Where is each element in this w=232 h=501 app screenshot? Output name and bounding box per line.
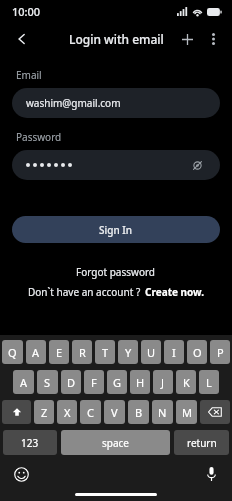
staticText: Email [16,68,42,82]
staticText: G [113,375,122,390]
button[interactable]: space [61,430,170,455]
staticText: M [182,405,192,420]
button[interactable]: Show password [188,156,206,174]
staticText: E [56,345,63,360]
staticText: O [193,345,202,360]
button[interactable]: E [49,340,69,364]
button[interactable]: A [26,340,46,364]
staticText: Create now. [145,285,205,299]
staticText: Login with email [69,31,164,47]
staticText: A [32,345,40,360]
staticText: J [161,375,165,390]
staticText: return [187,436,217,450]
button[interactable]: Sign In [12,216,220,243]
staticText: space [102,436,129,450]
staticText: A [20,375,28,390]
staticText: P [217,345,224,360]
button[interactable]: Emoji [12,465,30,483]
button[interactable]: U [141,340,161,364]
staticText: U [147,345,156,360]
button[interactable]: X [57,400,77,424]
button[interactable]: L [199,370,219,394]
staticText: T [102,345,109,360]
button[interactable]: F [84,370,104,394]
button[interactable]: D [61,370,81,394]
staticText: Sign In [99,223,133,237]
button[interactable]: More options [200,26,226,52]
staticText: N [158,405,167,420]
button[interactable]: M [176,400,197,424]
staticText: Z [41,405,48,420]
button[interactable]: Create now. [145,285,205,299]
button[interactable]: washim@gmail.com [12,88,220,118]
button[interactable]: S [37,370,58,394]
staticText: I [172,345,176,360]
staticText: C [87,405,94,420]
staticText: S [44,375,51,390]
button[interactable]: Shift [2,400,31,424]
staticText: R [79,345,86,360]
button[interactable]: return [174,430,229,455]
button[interactable]: C [80,400,101,424]
staticText: washim@gmail.com [26,96,121,110]
staticText: Don`t have an account ? [28,285,141,299]
button[interactable]: B [128,400,149,424]
staticText: X [64,405,71,420]
button[interactable]: K [176,370,196,394]
button[interactable]: Q [2,340,23,364]
staticText: V [111,405,118,420]
staticText: Y [125,345,132,360]
staticText: Password [16,130,62,144]
button[interactable]: H [130,370,150,394]
button[interactable]: Forgot password [70,263,162,281]
button[interactable]: Back [8,25,36,53]
button[interactable]: 123 [3,430,57,455]
button[interactable]: J [153,370,173,394]
staticText: D [67,375,76,390]
button[interactable]: Show password [12,150,220,180]
button[interactable]: T [95,340,115,364]
staticText: F [91,375,97,390]
staticText: Forgot password [76,265,156,279]
button[interactable]: G [107,370,127,394]
staticText: B [135,405,143,420]
button[interactable]: P [210,340,230,364]
button[interactable]: A [13,370,34,394]
staticText: K [183,375,190,390]
button[interactable]: Add [174,26,200,52]
staticText: Q [8,345,17,360]
button[interactable]: V [104,400,125,424]
staticText: 10:00 [12,4,41,19]
button[interactable]: Z [34,400,54,424]
staticText: L [206,375,212,390]
button[interactable]: O [187,340,207,364]
button[interactable]: I [164,340,184,364]
button[interactable]: Y [118,340,138,364]
staticText: 123 [21,436,39,450]
button[interactable]: Voice input [202,465,220,483]
button[interactable]: N [152,400,173,424]
button[interactable]: Backspace [200,400,230,424]
staticText: H [136,375,145,390]
button[interactable]: R [72,340,92,364]
